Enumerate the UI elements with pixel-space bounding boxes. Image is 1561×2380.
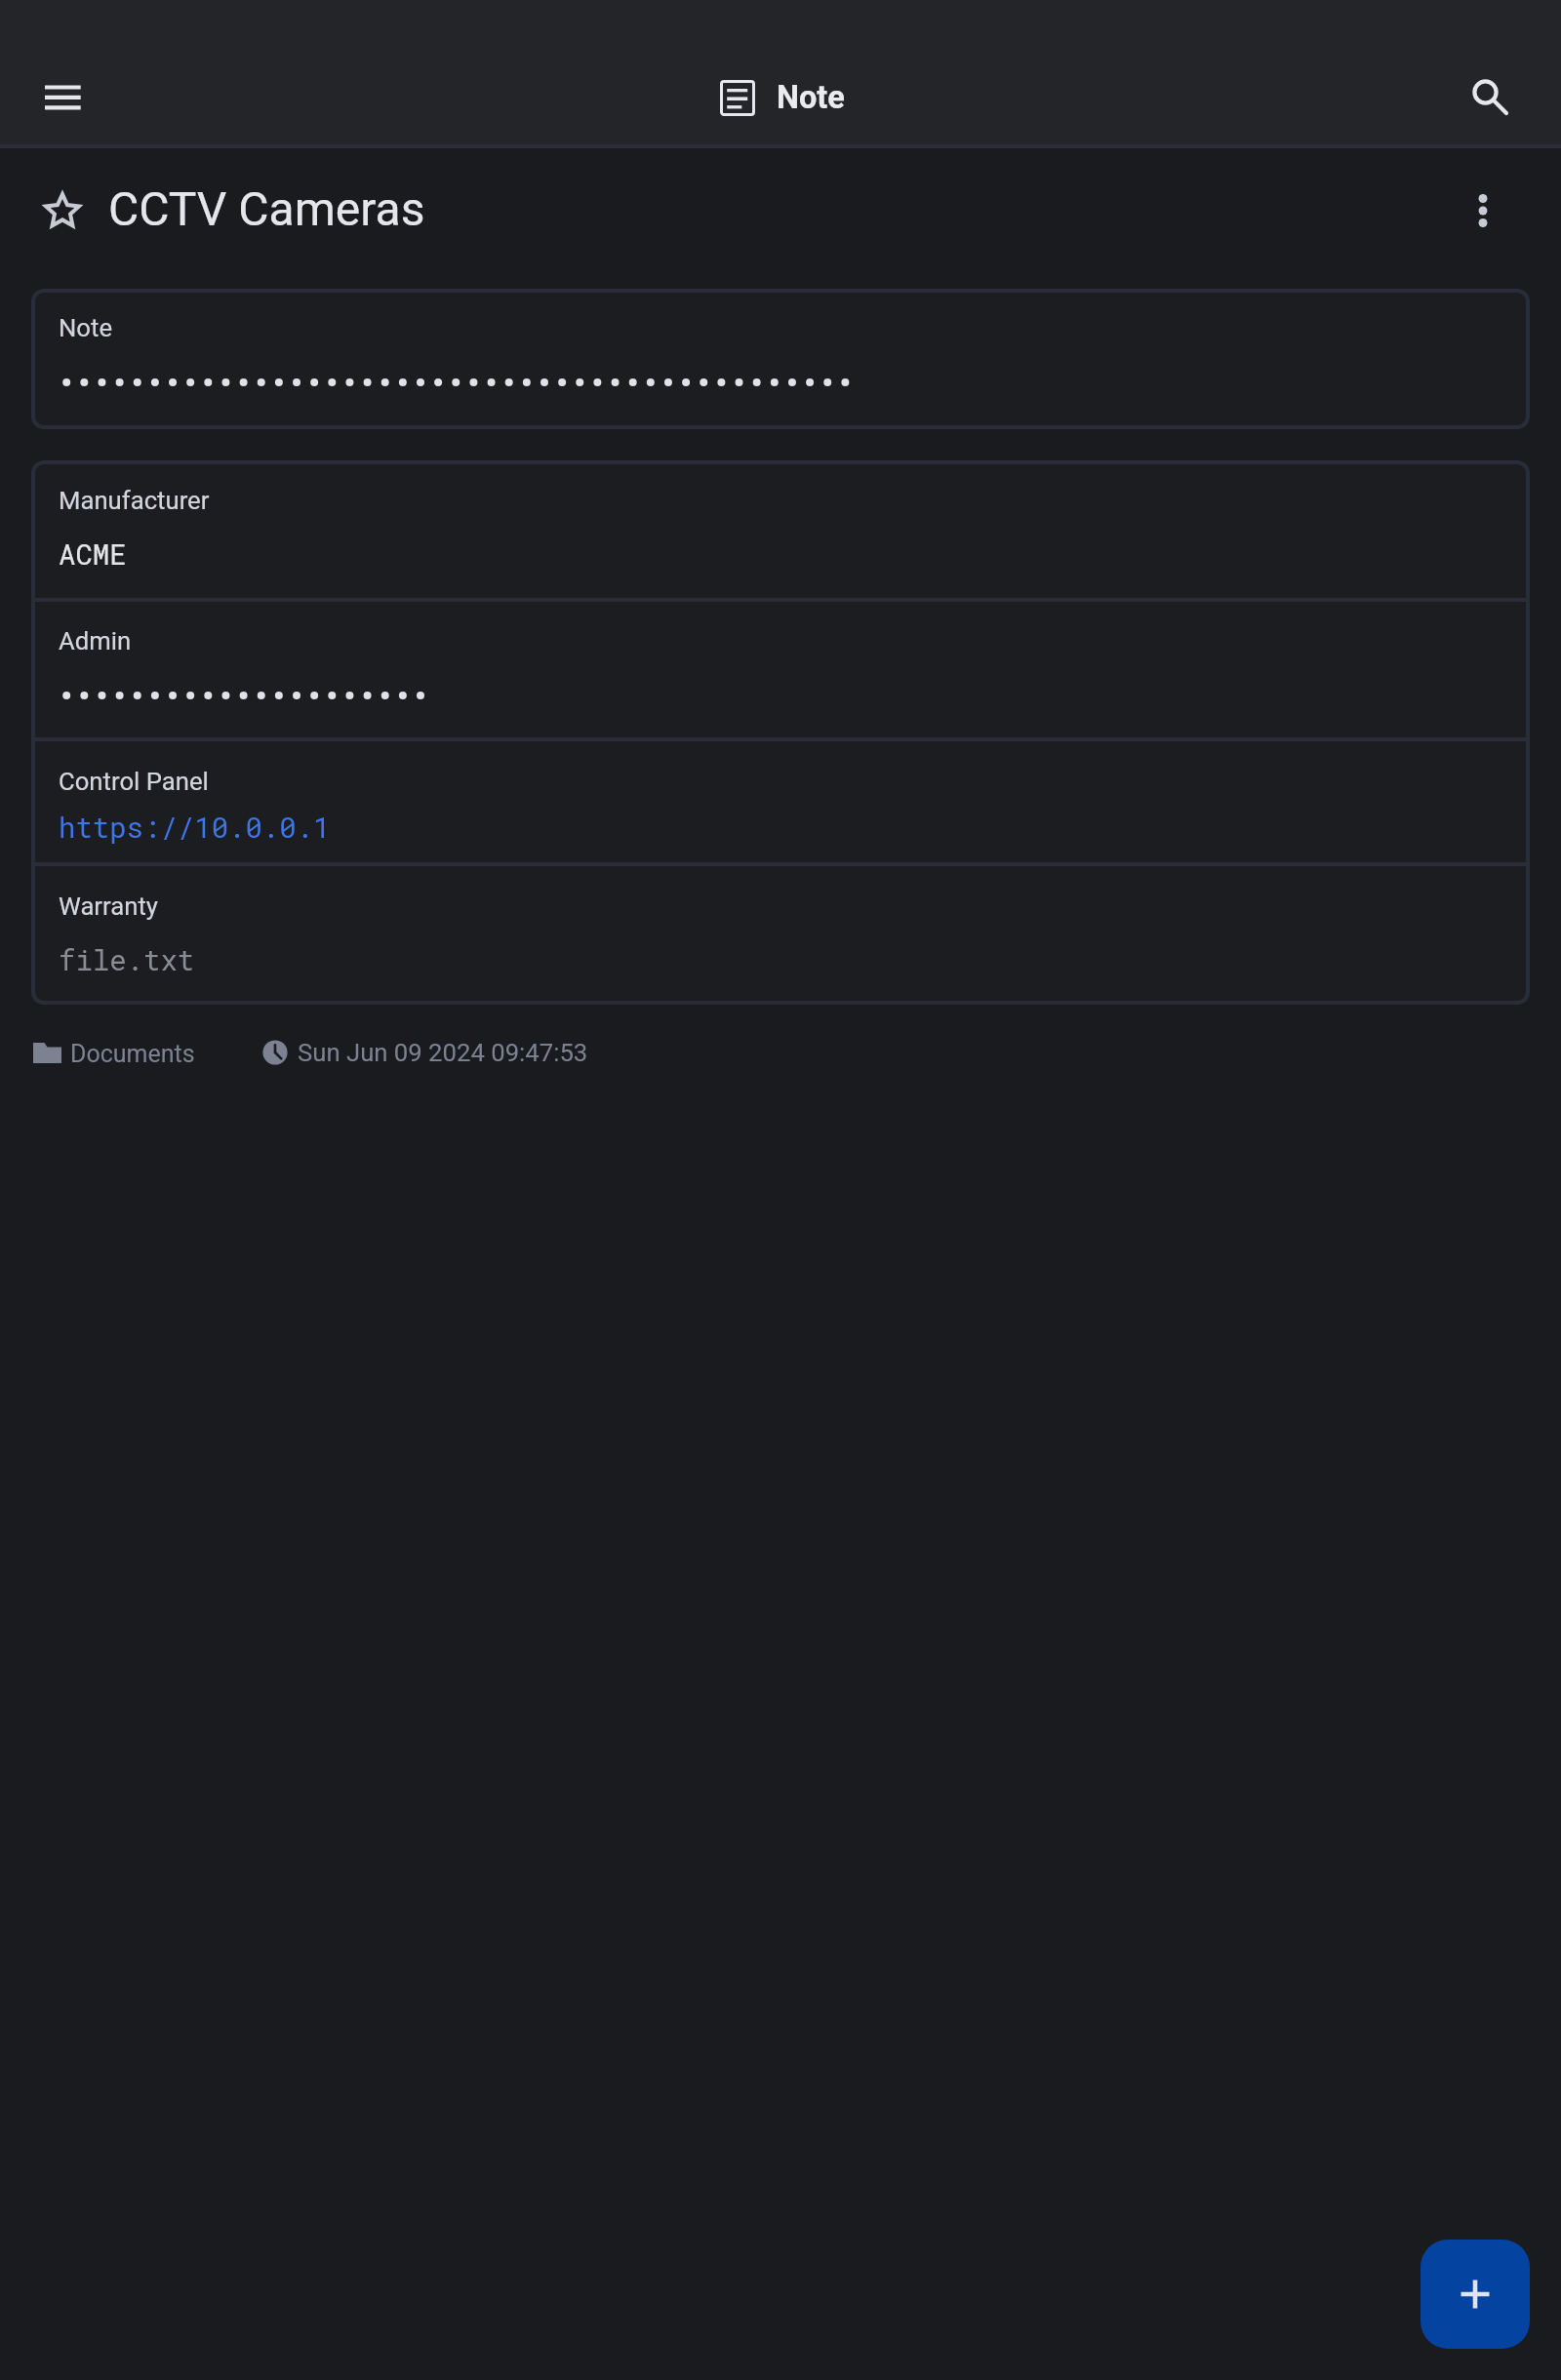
button[interactable]: Add item	[1421, 2240, 1530, 2349]
staticText: Manufacturer	[59, 486, 210, 515]
button[interactable]: More options	[1450, 178, 1516, 244]
button[interactable]: Admin	[31, 602, 1530, 737]
button[interactable]: Search	[1453, 59, 1519, 126]
staticText: Note	[59, 313, 112, 342]
staticText: ACME	[59, 535, 127, 573]
staticText: Sun Jun 09 2024 09:47:53	[298, 1038, 588, 1067]
button[interactable]: Warranty	[31, 866, 1530, 1005]
button[interactable]: Note	[31, 289, 1530, 429]
staticText: Documents	[70, 1040, 195, 1068]
staticText: Warranty	[59, 892, 158, 921]
staticText: Note	[777, 79, 845, 116]
staticText: CCTV Cameras	[108, 181, 425, 236]
staticText: Control Panel	[59, 767, 209, 796]
staticText: Admin	[59, 626, 132, 655]
staticText: https://10.0.0.1	[59, 809, 331, 846]
staticText: file.txt	[59, 941, 195, 978]
button[interactable]: Manufacturer	[31, 460, 1530, 600]
button[interactable]: Add to favourites	[29, 178, 96, 245]
button[interactable]: Open navigation menu	[21, 64, 88, 131]
button[interactable]: Control Panel	[31, 741, 1530, 862]
